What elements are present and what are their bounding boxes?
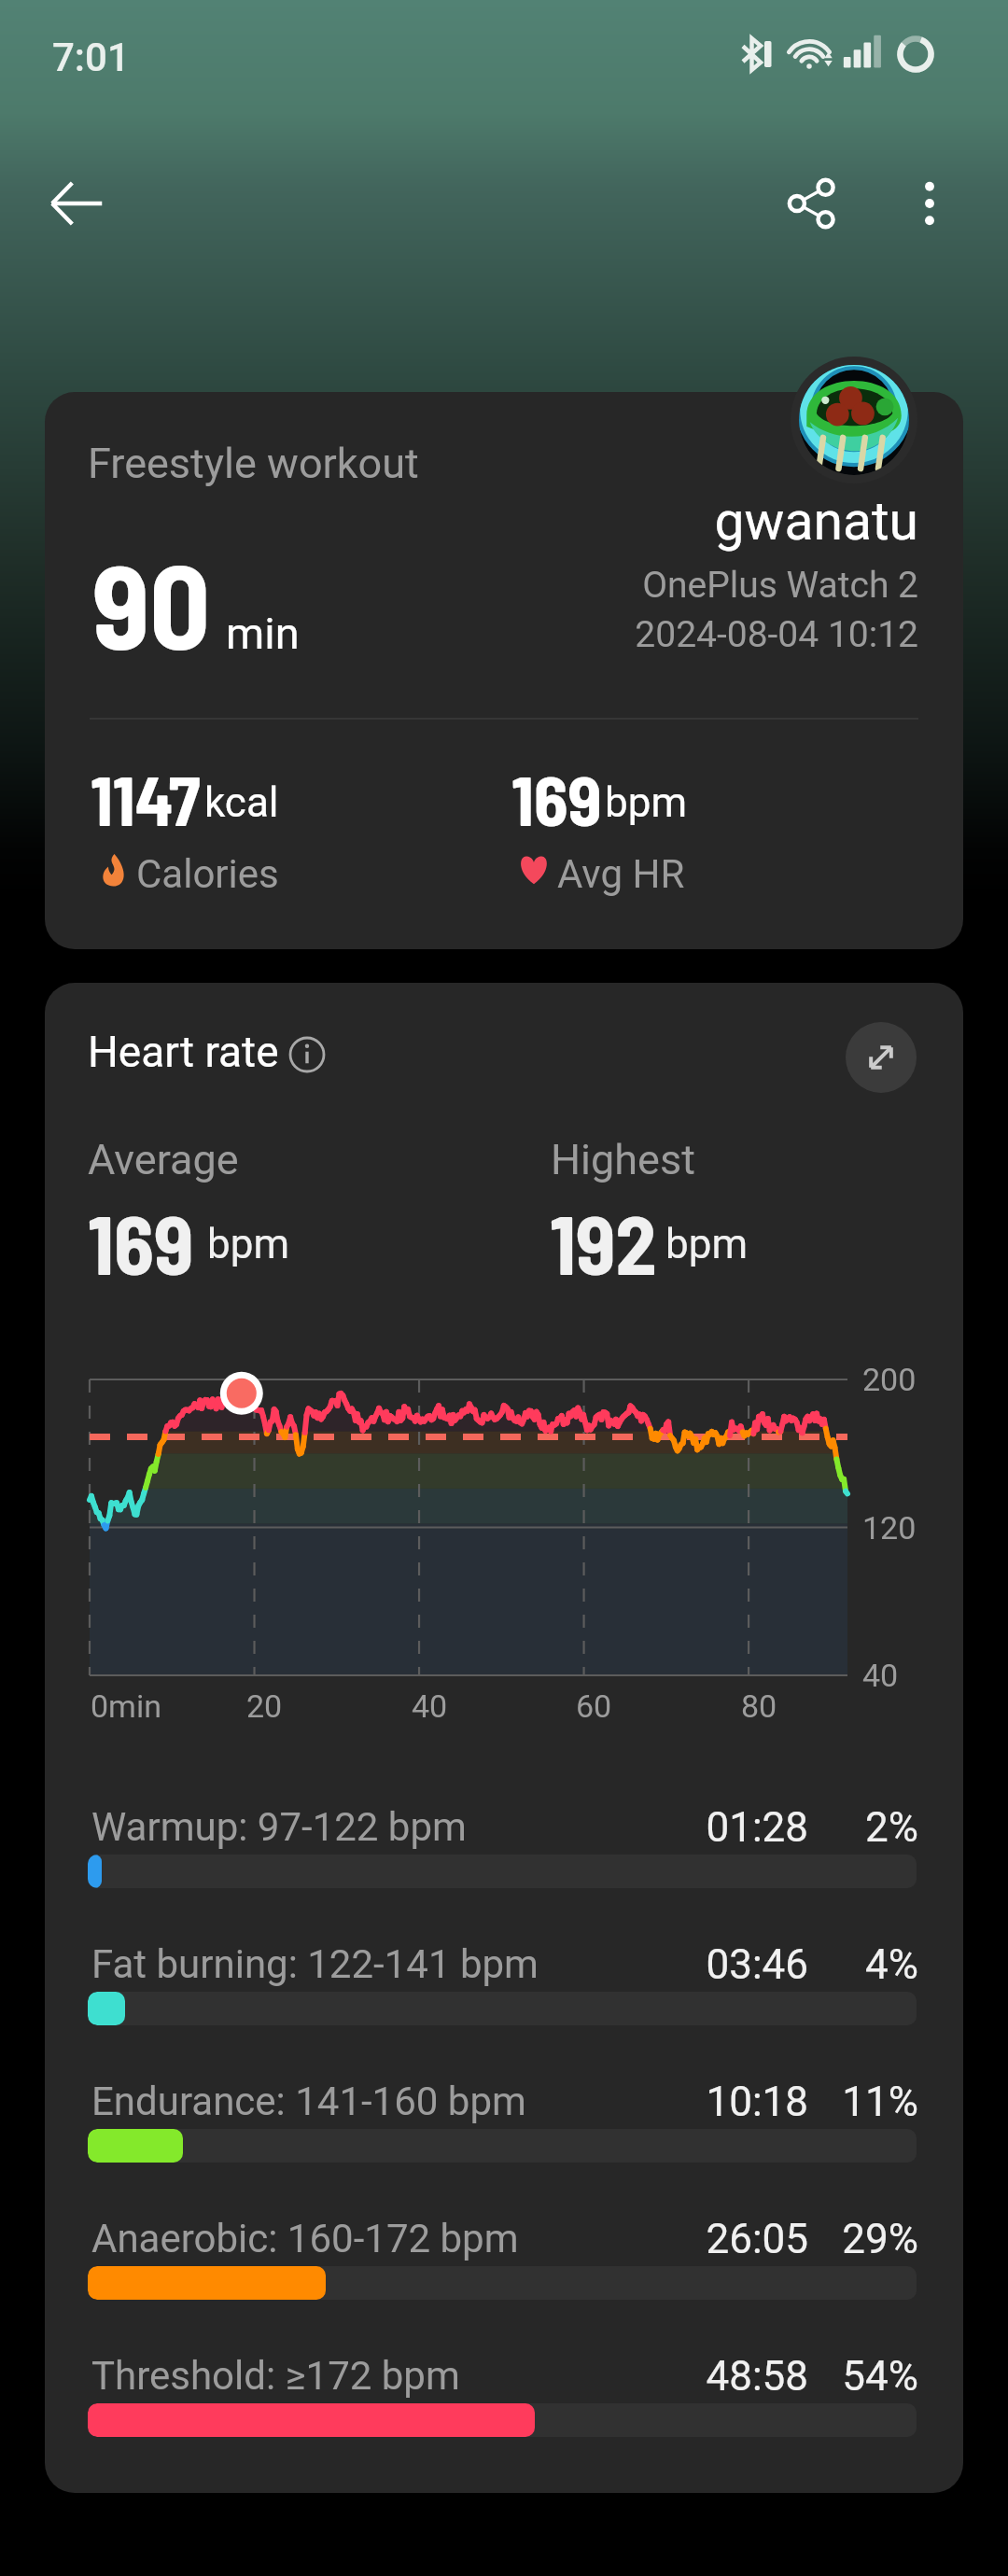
staticText: 192	[550, 1193, 657, 1292]
staticText: 1147	[91, 756, 201, 840]
staticText: 7:01	[52, 35, 130, 80]
staticText: 03:46	[623, 1940, 808, 1989]
staticText: 20	[246, 1687, 283, 1725]
staticText: 40	[862, 1657, 899, 1694]
staticText: 169	[88, 1193, 194, 1292]
staticText: Warmup: 97-122 bpm	[91, 1804, 467, 1850]
staticText: 169	[511, 756, 602, 840]
staticText: 120	[862, 1509, 917, 1547]
button[interactable]: Expand chart	[846, 1022, 917, 1093]
staticText: min	[226, 608, 300, 659]
staticText: 01:28	[623, 1803, 808, 1852]
button[interactable]: Freestyle workout	[45, 392, 963, 949]
staticText: gwanatu	[45, 490, 918, 553]
staticText: Fat burning: 122-141 bpm	[91, 1941, 539, 1987]
staticText: Endurance: 141-160 bpm	[91, 2079, 526, 2124]
staticText: Heart rate	[88, 1027, 279, 1077]
staticText: 48:58	[623, 2352, 808, 2401]
staticText: 11%	[808, 2078, 918, 2126]
staticText: Anaerobic: 160-172 bpm	[91, 2216, 519, 2261]
staticText: Calories	[136, 851, 279, 897]
staticText: 200	[862, 1361, 917, 1398]
staticText: 2024-08-04 10:12	[45, 613, 918, 656]
staticText: Highest	[551, 1135, 695, 1184]
staticText: 4%	[808, 1940, 918, 1989]
staticText: 29%	[808, 2215, 918, 2263]
button[interactable]: Share	[765, 157, 859, 250]
staticText: 10:18	[623, 2078, 808, 2126]
button[interactable]: More options	[883, 157, 976, 250]
staticText: 2%	[808, 1803, 918, 1852]
button[interactable]: Profile picture	[791, 357, 917, 483]
staticText: bpm	[207, 1220, 289, 1268]
staticText: Freestyle workout	[88, 439, 419, 488]
staticText: Average	[88, 1135, 239, 1184]
staticText: 54%	[808, 2352, 918, 2401]
staticText: 90	[92, 531, 211, 673]
staticText: OnePlus Watch 2	[45, 564, 918, 607]
staticText: Threshold: ≥172 bpm	[91, 2353, 460, 2399]
staticText: 60	[576, 1687, 612, 1725]
staticText: Avg HR	[557, 851, 685, 897]
staticText: 40	[412, 1687, 448, 1725]
staticText: 80	[741, 1687, 777, 1725]
button[interactable]: Back	[30, 157, 123, 250]
staticText: bpm	[605, 778, 687, 827]
staticText: 0min	[91, 1687, 161, 1725]
staticText: 26:05	[623, 2215, 808, 2263]
staticText: bpm	[665, 1220, 748, 1268]
staticText: kcal	[204, 778, 279, 827]
